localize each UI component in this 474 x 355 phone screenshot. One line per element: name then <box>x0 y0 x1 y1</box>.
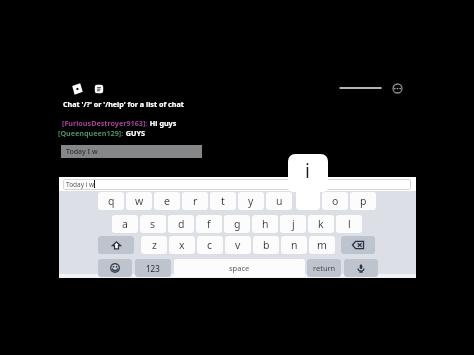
staticText: i <box>305 158 310 184</box>
button[interactable] <box>98 236 134 254</box>
staticText: q <box>108 194 115 208</box>
button[interactable]: z <box>141 236 167 254</box>
button[interactable]: More options <box>392 83 403 94</box>
button[interactable]: Today i w <box>63 179 411 190</box>
button[interactable]: 123 <box>135 259 171 277</box>
button[interactable]: r <box>182 192 208 210</box>
staticText: Hi guys <box>148 118 177 128</box>
button[interactable]: e <box>154 192 180 210</box>
staticText: [Queenqueen129]: <box>58 128 124 138</box>
staticText: j <box>292 217 295 231</box>
staticText: m <box>317 238 327 252</box>
button[interactable]: q <box>98 192 124 210</box>
button[interactable]: m <box>309 236 335 254</box>
staticText: n <box>291 238 298 252</box>
staticText: Today i w <box>66 180 95 189</box>
staticText: w <box>135 194 144 208</box>
staticText: l <box>348 217 351 231</box>
staticText: s <box>150 217 156 231</box>
button[interactable]: w <box>126 192 152 210</box>
staticText: x <box>179 238 185 252</box>
staticText: z <box>152 238 157 252</box>
staticText: b <box>263 238 270 252</box>
button[interactable]: u <box>266 192 292 210</box>
button[interactable]: space <box>174 259 305 277</box>
staticText: GUYS <box>124 128 145 138</box>
button[interactable]: f <box>196 215 222 233</box>
button[interactable]: b <box>253 236 279 254</box>
button[interactable]: s <box>140 215 166 233</box>
staticText: f <box>207 217 211 231</box>
button[interactable]: g <box>224 215 250 233</box>
staticText: p <box>360 194 367 208</box>
button[interactable] <box>344 259 378 277</box>
button[interactable]: n <box>281 236 307 254</box>
button[interactable]: y <box>238 192 264 210</box>
button[interactable]: Roblox <box>71 83 83 95</box>
button[interactable]: j <box>280 215 306 233</box>
button[interactable]: h <box>252 215 278 233</box>
staticText: y <box>248 194 254 208</box>
staticText: o <box>332 194 339 208</box>
button[interactable]: a <box>112 215 138 233</box>
staticText: space <box>229 263 250 273</box>
staticText: k <box>318 217 324 231</box>
button[interactable] <box>341 236 375 254</box>
button[interactable]: d <box>168 215 194 233</box>
staticText: v <box>235 238 241 252</box>
button[interactable]: p <box>350 192 376 210</box>
staticText: Today I w <box>66 147 98 157</box>
button[interactable]: k <box>308 215 334 233</box>
staticText: [FuriousDestroyer9163]: <box>62 118 148 128</box>
staticText: return <box>313 263 336 273</box>
button[interactable]: v <box>225 236 251 254</box>
button[interactable]: t <box>210 192 236 210</box>
staticText: h <box>262 217 269 231</box>
staticText: u <box>276 194 283 208</box>
staticText: d <box>178 217 185 231</box>
button[interactable]: x <box>169 236 195 254</box>
button[interactable]: Chat <box>94 84 104 94</box>
staticText: a <box>122 217 128 231</box>
staticText: e <box>164 194 170 208</box>
staticText: Chat '/?' or '/help' for a list of chat <box>63 99 184 109</box>
staticText: g <box>234 217 241 231</box>
staticText: 123 <box>146 263 160 274</box>
button[interactable]: c <box>197 236 223 254</box>
button[interactable] <box>98 259 132 277</box>
button[interactable]: Today I w <box>61 145 202 158</box>
button[interactable]: return <box>307 259 341 277</box>
button[interactable]: i <box>288 154 328 192</box>
staticText: r <box>193 194 198 208</box>
button[interactable]: l <box>336 215 362 233</box>
staticText: c <box>207 238 213 252</box>
button[interactable]: o <box>322 192 348 210</box>
staticText: t <box>221 194 225 208</box>
